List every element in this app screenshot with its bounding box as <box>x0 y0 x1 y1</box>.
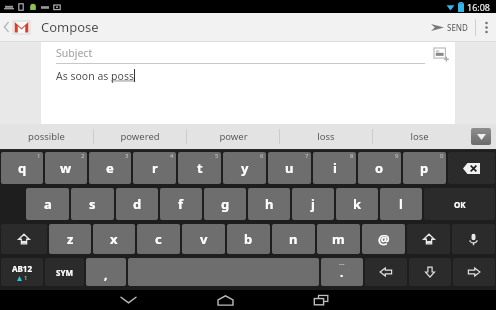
button[interactable]: Switch to numbers <box>1 258 43 286</box>
button[interactable]: possible <box>0 124 93 149</box>
staticText: y <box>241 159 249 177</box>
staticText: z <box>67 230 74 248</box>
button[interactable]: Subject <box>41 46 455 64</box>
button[interactable]: w <box>45 152 87 184</box>
button[interactable]: OK <box>424 188 495 220</box>
staticText: q <box>18 159 27 177</box>
staticText: i <box>333 159 337 177</box>
staticText: w <box>60 159 72 177</box>
button[interactable]: g <box>204 188 246 220</box>
staticText: Subject <box>56 46 93 60</box>
staticText: f <box>178 195 184 213</box>
button[interactable]: Shift <box>407 224 450 254</box>
button[interactable]: loss <box>280 124 372 149</box>
button[interactable]: i <box>313 152 356 184</box>
staticText: h <box>265 195 274 213</box>
button[interactable]: Shift <box>1 224 47 254</box>
staticText: loss <box>317 130 335 143</box>
button[interactable]: power <box>187 124 279 149</box>
staticText: OK <box>454 199 466 210</box>
button[interactable]: lose <box>373 124 465 149</box>
button[interactable]: Down <box>409 258 451 286</box>
button[interactable]: e <box>89 152 131 184</box>
button[interactable]: k <box>336 188 378 220</box>
staticText: 1 <box>37 152 41 160</box>
staticText: power <box>219 130 248 143</box>
button[interactable]: Right <box>453 258 495 286</box>
staticText: d <box>133 195 142 213</box>
button[interactable]: Attach picture <box>431 47 451 63</box>
button[interactable]: More options <box>476 13 496 41</box>
staticText: lose <box>410 130 429 143</box>
button[interactable]: d <box>116 188 158 220</box>
button[interactable]: Voice input <box>452 224 495 254</box>
button[interactable]: c <box>137 224 180 254</box>
staticText: 3 <box>125 152 129 160</box>
button[interactable]: f <box>160 188 202 220</box>
staticText: a <box>44 195 52 213</box>
staticText: 7 <box>305 152 309 160</box>
staticText: Compose <box>41 18 99 36</box>
staticText: l <box>399 195 403 213</box>
button[interactable]: s <box>71 188 114 220</box>
button[interactable]: powered <box>94 124 186 149</box>
button[interactable]: More suggestions <box>465 124 496 149</box>
button[interactable]: Left <box>365 258 407 286</box>
button[interactable]: Home <box>195 290 255 310</box>
staticText: . <box>340 264 344 280</box>
button[interactable]: p <box>403 152 446 184</box>
staticText: possible <box>28 130 65 143</box>
staticText: c <box>155 230 162 248</box>
button[interactable]: t <box>178 152 221 184</box>
button[interactable]: @ <box>362 224 405 254</box>
button[interactable]: v <box>182 224 225 254</box>
staticText: k <box>353 195 362 213</box>
staticText: 9 <box>395 152 399 160</box>
button[interactable]: Recent apps <box>291 290 351 310</box>
staticText: 0 <box>440 152 444 160</box>
button[interactable]: r <box>133 152 176 184</box>
staticText: 6 <box>260 152 264 160</box>
button[interactable]: x <box>93 224 135 254</box>
button[interactable]: b <box>227 224 270 254</box>
button[interactable]: o <box>358 152 401 184</box>
staticText: 2 <box>81 152 85 160</box>
staticText: n <box>289 230 298 248</box>
staticText: @ <box>378 230 390 248</box>
button[interactable]: a <box>26 188 69 220</box>
button[interactable]: Navigate up <box>0 13 32 41</box>
button[interactable]: z <box>49 224 91 254</box>
button[interactable]: j <box>292 188 334 220</box>
button[interactable]: Comma <box>86 258 126 286</box>
button[interactable]: As soon as poss <box>56 69 455 83</box>
button[interactable]: q <box>1 152 43 184</box>
staticText: o <box>375 159 384 177</box>
staticText: m <box>332 230 345 248</box>
staticText: 1 <box>24 274 28 282</box>
staticText: 4 <box>170 152 174 160</box>
staticText: e <box>106 159 114 177</box>
staticText: powered <box>120 130 160 143</box>
button[interactable]: SEND <box>424 13 475 41</box>
button[interactable]: SYM <box>45 258 84 286</box>
button[interactable]: Hide keyboard <box>98 290 159 310</box>
staticText: b <box>244 230 253 248</box>
button[interactable]: Period <box>321 258 363 286</box>
staticText: 8 <box>350 152 354 160</box>
button[interactable]: y <box>223 152 266 184</box>
button[interactable]: h <box>248 188 290 220</box>
button[interactable]: Delete <box>448 152 495 184</box>
other: Navigate up <box>3 21 10 33</box>
staticText: As soon as poss <box>56 69 134 83</box>
button[interactable]: n <box>272 224 315 254</box>
staticText: 16:08 <box>467 1 491 13</box>
button[interactable]: m <box>317 224 360 254</box>
staticText: u <box>285 159 294 177</box>
staticText: g <box>221 195 230 213</box>
button[interactable]: u <box>268 152 311 184</box>
staticText: j <box>311 195 315 213</box>
staticText: ... <box>339 258 345 268</box>
button[interactable]: l <box>380 188 422 220</box>
staticText: p <box>420 159 429 177</box>
